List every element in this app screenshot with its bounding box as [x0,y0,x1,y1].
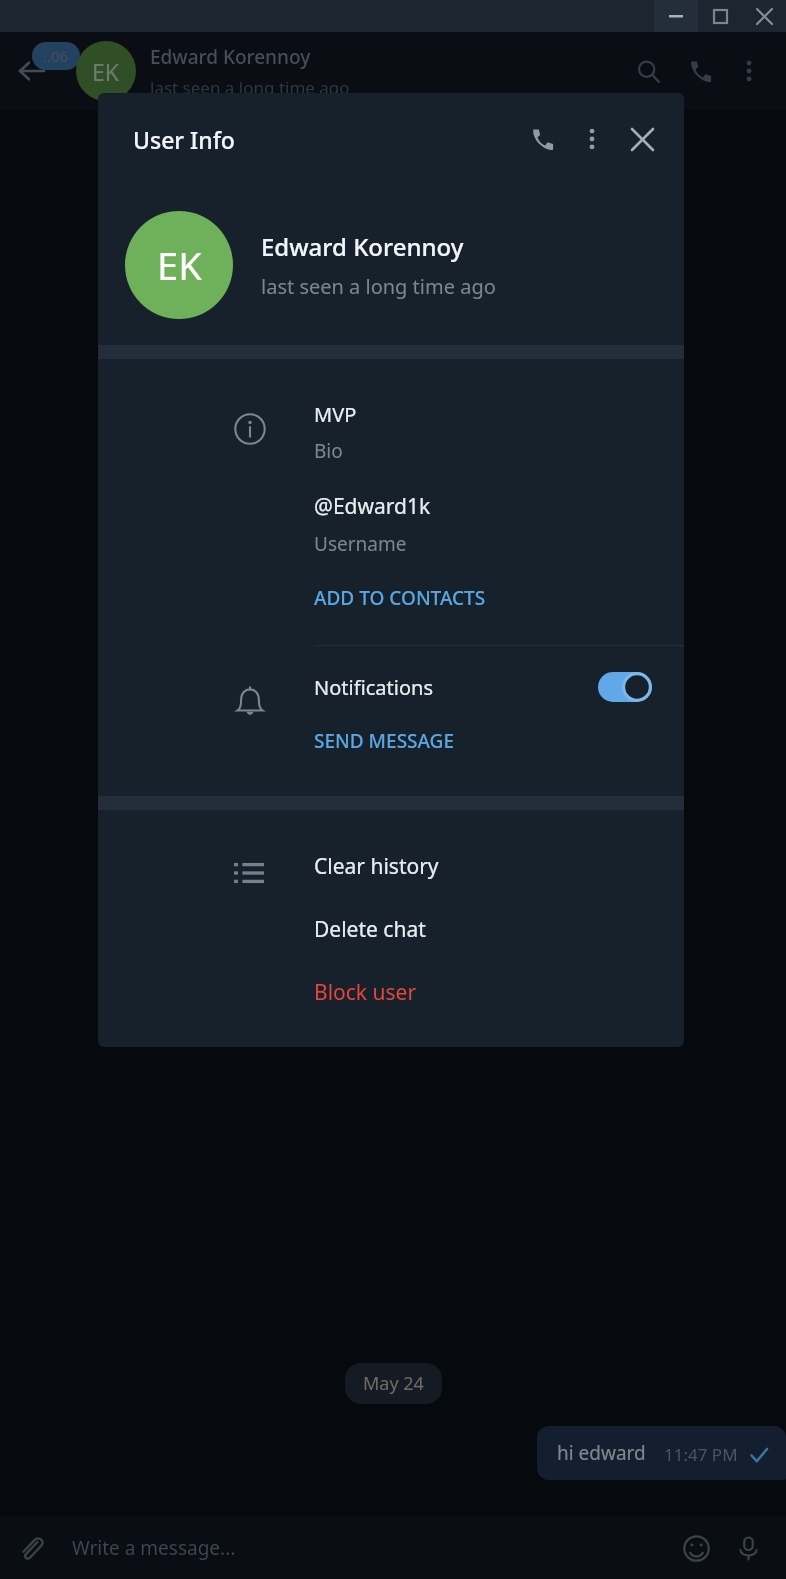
button[interactable]: Delete chat [314,915,684,944]
button[interactable]: Call [674,45,726,97]
button[interactable]: Block user [314,978,684,1007]
staticText: 11:47 PM [664,1443,738,1466]
staticText: last seen a long time ago [150,76,350,99]
staticText: MVP [314,401,357,428]
staticText: Clear history [314,852,439,881]
staticText: Edward Korennoy [261,230,464,263]
staticText: @Edward1k [314,492,431,521]
button[interactable]: @Edward1k [314,492,684,557]
staticText: Username [314,531,407,557]
button[interactable]: ADD TO CONTACTS [314,585,684,611]
button[interactable]: Search [622,45,674,97]
staticText: ADD TO CONTACTS [314,585,486,611]
button[interactable]: Minimize [654,0,698,32]
button[interactable]: hi edward [557,1440,768,1466]
button[interactable]: MVP [314,401,684,464]
staticText: SEND MESSAGE [314,728,454,754]
button[interactable]: Notifications [314,646,652,728]
staticText: Write a message... [72,1535,236,1561]
staticText: User Info [133,124,235,155]
button[interactable]: Attach [8,1525,54,1571]
staticText: Bio [314,438,343,464]
button[interactable]: Close [742,0,786,32]
button[interactable]: Notifications toggle [598,672,652,702]
staticText: Delete chat [314,915,426,944]
button[interactable]: Maximize [698,0,742,32]
button[interactable]: Voice message [722,1522,774,1574]
staticText: Block user [314,978,417,1007]
button[interactable]: Emoji [670,1522,722,1574]
button[interactable]: Close [616,113,668,165]
button[interactable]: Call [516,113,568,165]
button[interactable]: SEND MESSAGE [314,728,454,754]
button[interactable]: May 24 [363,1371,424,1396]
staticText: May 24 [363,1371,424,1396]
button[interactable]: Back [8,48,54,94]
button[interactable]: More options [568,115,616,163]
staticText: last seen a long time ago [261,273,496,300]
staticText: Edward Korennoy [150,44,311,70]
button[interactable]: Clear history [314,852,684,881]
button[interactable]: More options [726,48,772,94]
staticText: Notifications [314,674,433,701]
staticText: ..06 [43,46,69,66]
staticText: EK [92,56,120,87]
staticText: hi edward [557,1440,646,1466]
staticText: EK [157,239,202,291]
